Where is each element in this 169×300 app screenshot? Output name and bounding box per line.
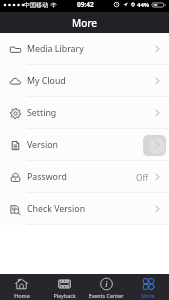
button[interactable]: My Cloud bbox=[0, 65, 169, 97]
button[interactable]: More bbox=[127, 274, 169, 300]
staticText: 中国移动 bbox=[24, 1, 48, 9]
button[interactable]: Version bbox=[0, 129, 169, 161]
staticText: Version bbox=[27, 139, 58, 151]
staticText: Setting bbox=[27, 107, 57, 119]
button[interactable]: Events Center bbox=[85, 274, 127, 300]
staticText: Check Version bbox=[27, 203, 86, 215]
button[interactable]: Playback bbox=[43, 274, 85, 300]
staticText: Playback bbox=[53, 292, 76, 299]
staticText: Password bbox=[27, 171, 67, 183]
staticText: Home bbox=[14, 292, 30, 299]
staticText: More bbox=[141, 292, 155, 299]
staticText: Off bbox=[136, 172, 149, 183]
staticText: 09:42 bbox=[77, 0, 94, 9]
staticText: Events Center bbox=[88, 292, 124, 299]
button[interactable]: Setting bbox=[0, 97, 169, 129]
button[interactable]: Password bbox=[0, 161, 169, 193]
button[interactable]: Check Version bbox=[0, 193, 169, 225]
button[interactable]: Media Library bbox=[0, 33, 169, 65]
staticText: Media Library bbox=[27, 43, 84, 55]
staticText: My Cloud bbox=[27, 75, 66, 87]
staticText: 44% bbox=[137, 1, 150, 9]
button[interactable]: Home bbox=[0, 274, 43, 300]
staticText: More bbox=[72, 16, 98, 30]
